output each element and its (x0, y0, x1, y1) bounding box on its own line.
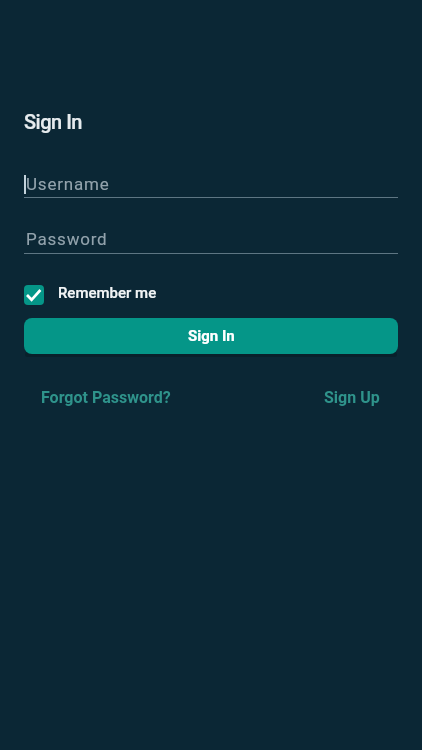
staticText: Sign In (24, 110, 82, 133)
staticText: Sign In (188, 327, 235, 345)
button[interactable]: Password (24, 220, 398, 254)
button[interactable]: Sign In (24, 318, 398, 354)
staticText: Sign Up (324, 388, 380, 407)
button[interactable]: Forgot Password? (24, 384, 190, 410)
staticText: Username (26, 174, 110, 194)
button[interactable]: Sign Up (306, 384, 398, 410)
staticText: Remember me (58, 284, 157, 302)
staticText: Forgot Password? (41, 388, 171, 407)
button[interactable]: Username (24, 164, 398, 198)
button[interactable]: Remember me (24, 285, 157, 305)
staticText: Password (26, 229, 108, 249)
